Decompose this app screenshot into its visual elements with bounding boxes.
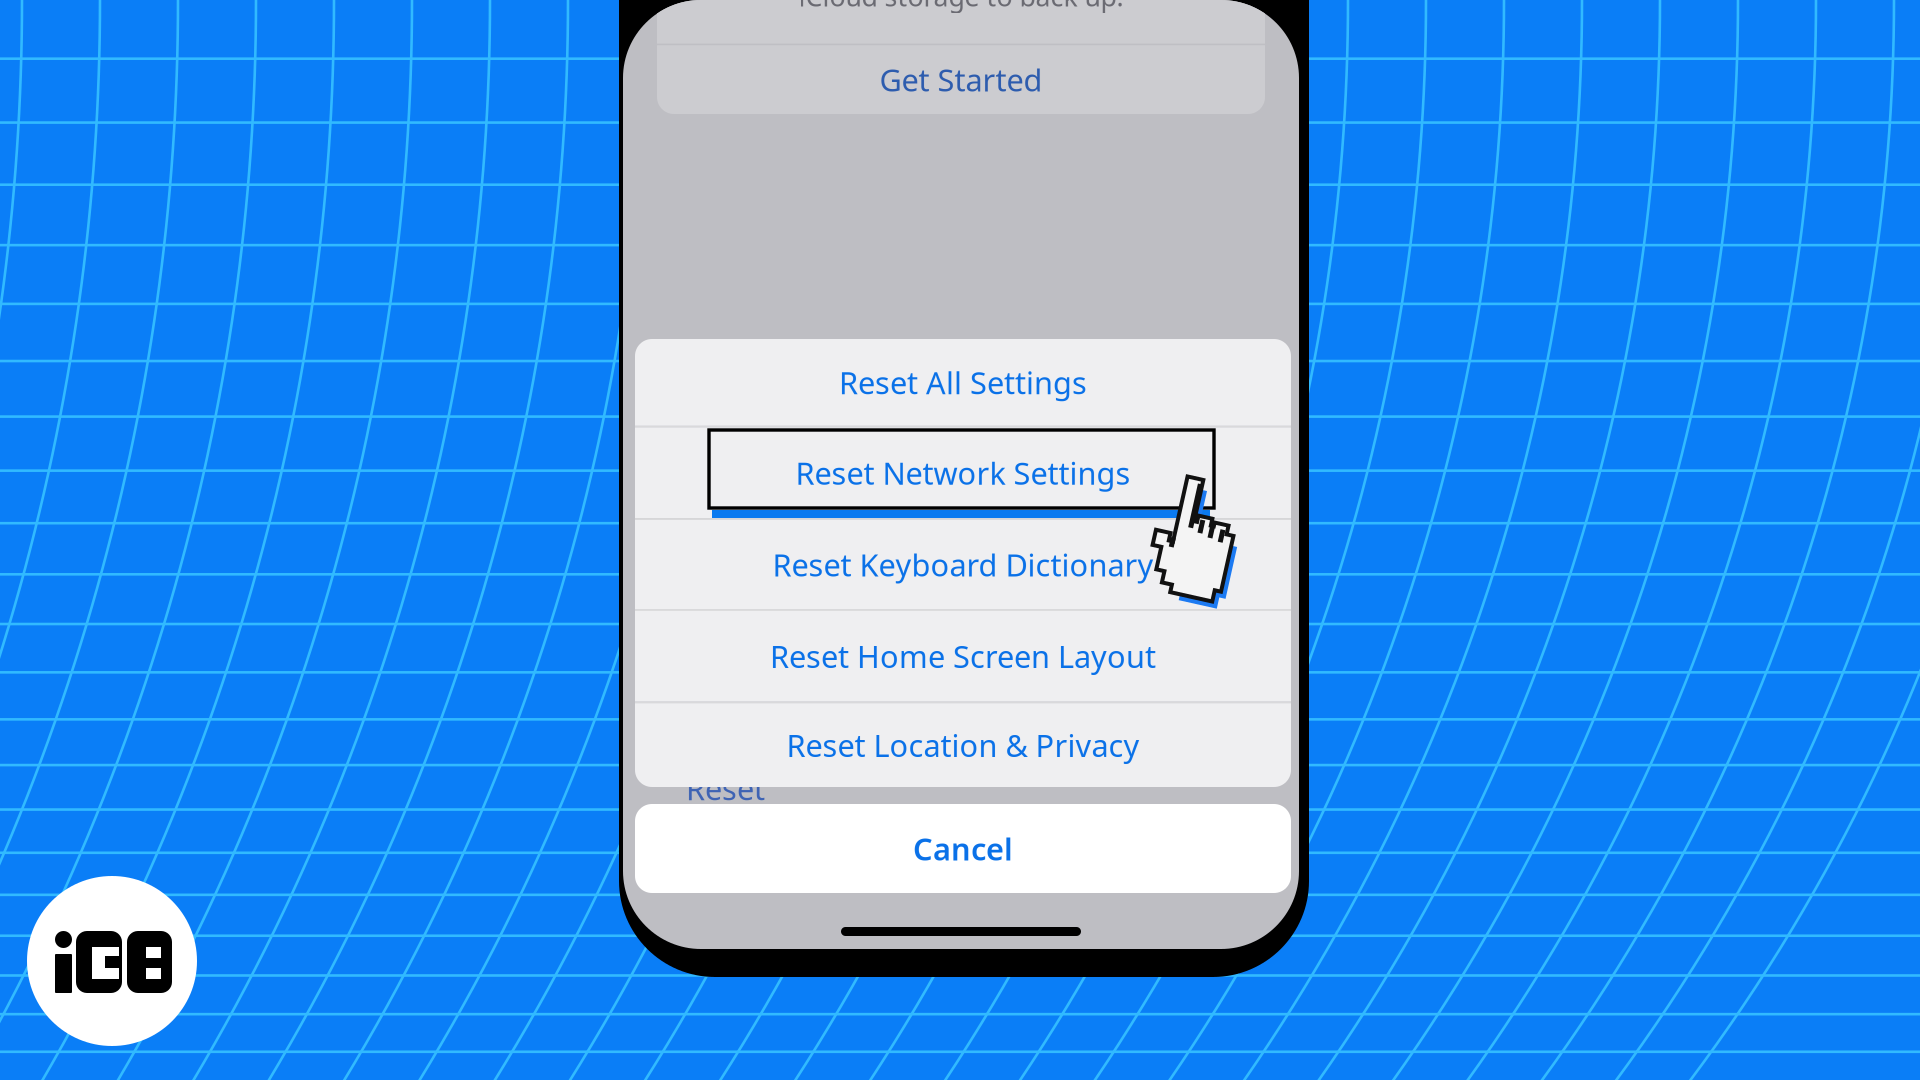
staticText: Reset Network Settings xyxy=(795,452,1130,493)
button[interactable]: Reset Home Screen Layout xyxy=(635,611,1291,702)
button[interactable]: Reset Location & Privacy xyxy=(635,703,1291,787)
staticText: Reset Keyboard Dictionary xyxy=(772,544,1153,585)
staticText: Cancel xyxy=(913,828,1013,869)
button[interactable]: Reset Network Settings xyxy=(635,427,1291,518)
staticText: Reset xyxy=(686,768,765,809)
staticText: Reset All Settings xyxy=(839,362,1087,403)
staticText: iCloud storage to back up. xyxy=(798,0,1123,14)
staticText: Get Started xyxy=(879,59,1042,100)
staticText: Reset Location & Privacy xyxy=(786,725,1139,765)
button[interactable]: Cancel xyxy=(635,804,1291,893)
button[interactable]: Reset Keyboard Dictionary xyxy=(635,520,1291,609)
button[interactable]: Reset All Settings xyxy=(635,339,1291,426)
staticText: Reset Home Screen Layout xyxy=(770,636,1156,676)
button[interactable]: Get Started xyxy=(657,45,1265,114)
